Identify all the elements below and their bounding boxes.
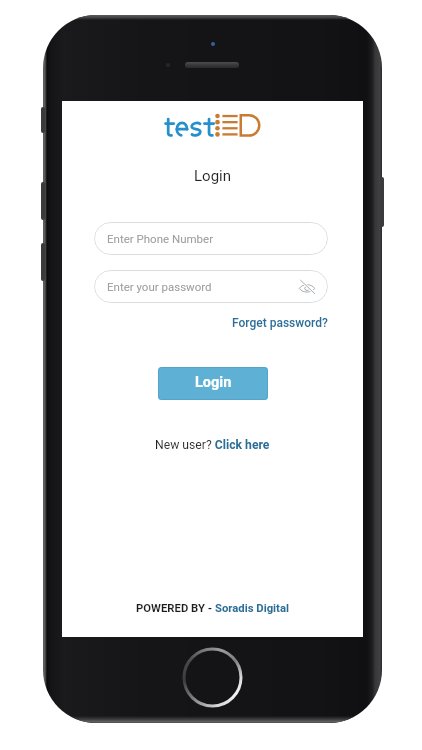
staticText: Login	[194, 167, 231, 185]
button[interactable]: Show password	[298, 278, 316, 296]
staticText: Login	[195, 374, 232, 391]
button[interactable]: Enter your password	[94, 270, 328, 303]
staticText: POWERED BY - Soradis Digital	[136, 602, 289, 615]
button[interactable]: New user? Click here	[155, 438, 270, 452]
button[interactable]: Home	[182, 647, 243, 708]
button[interactable]: Enter Phone Number	[94, 222, 328, 255]
staticText: Enter Phone Number	[107, 232, 214, 245]
staticText: Enter your password	[107, 280, 212, 293]
button[interactable]: Forget password?	[232, 316, 328, 330]
button[interactable]: Login	[158, 367, 268, 400]
